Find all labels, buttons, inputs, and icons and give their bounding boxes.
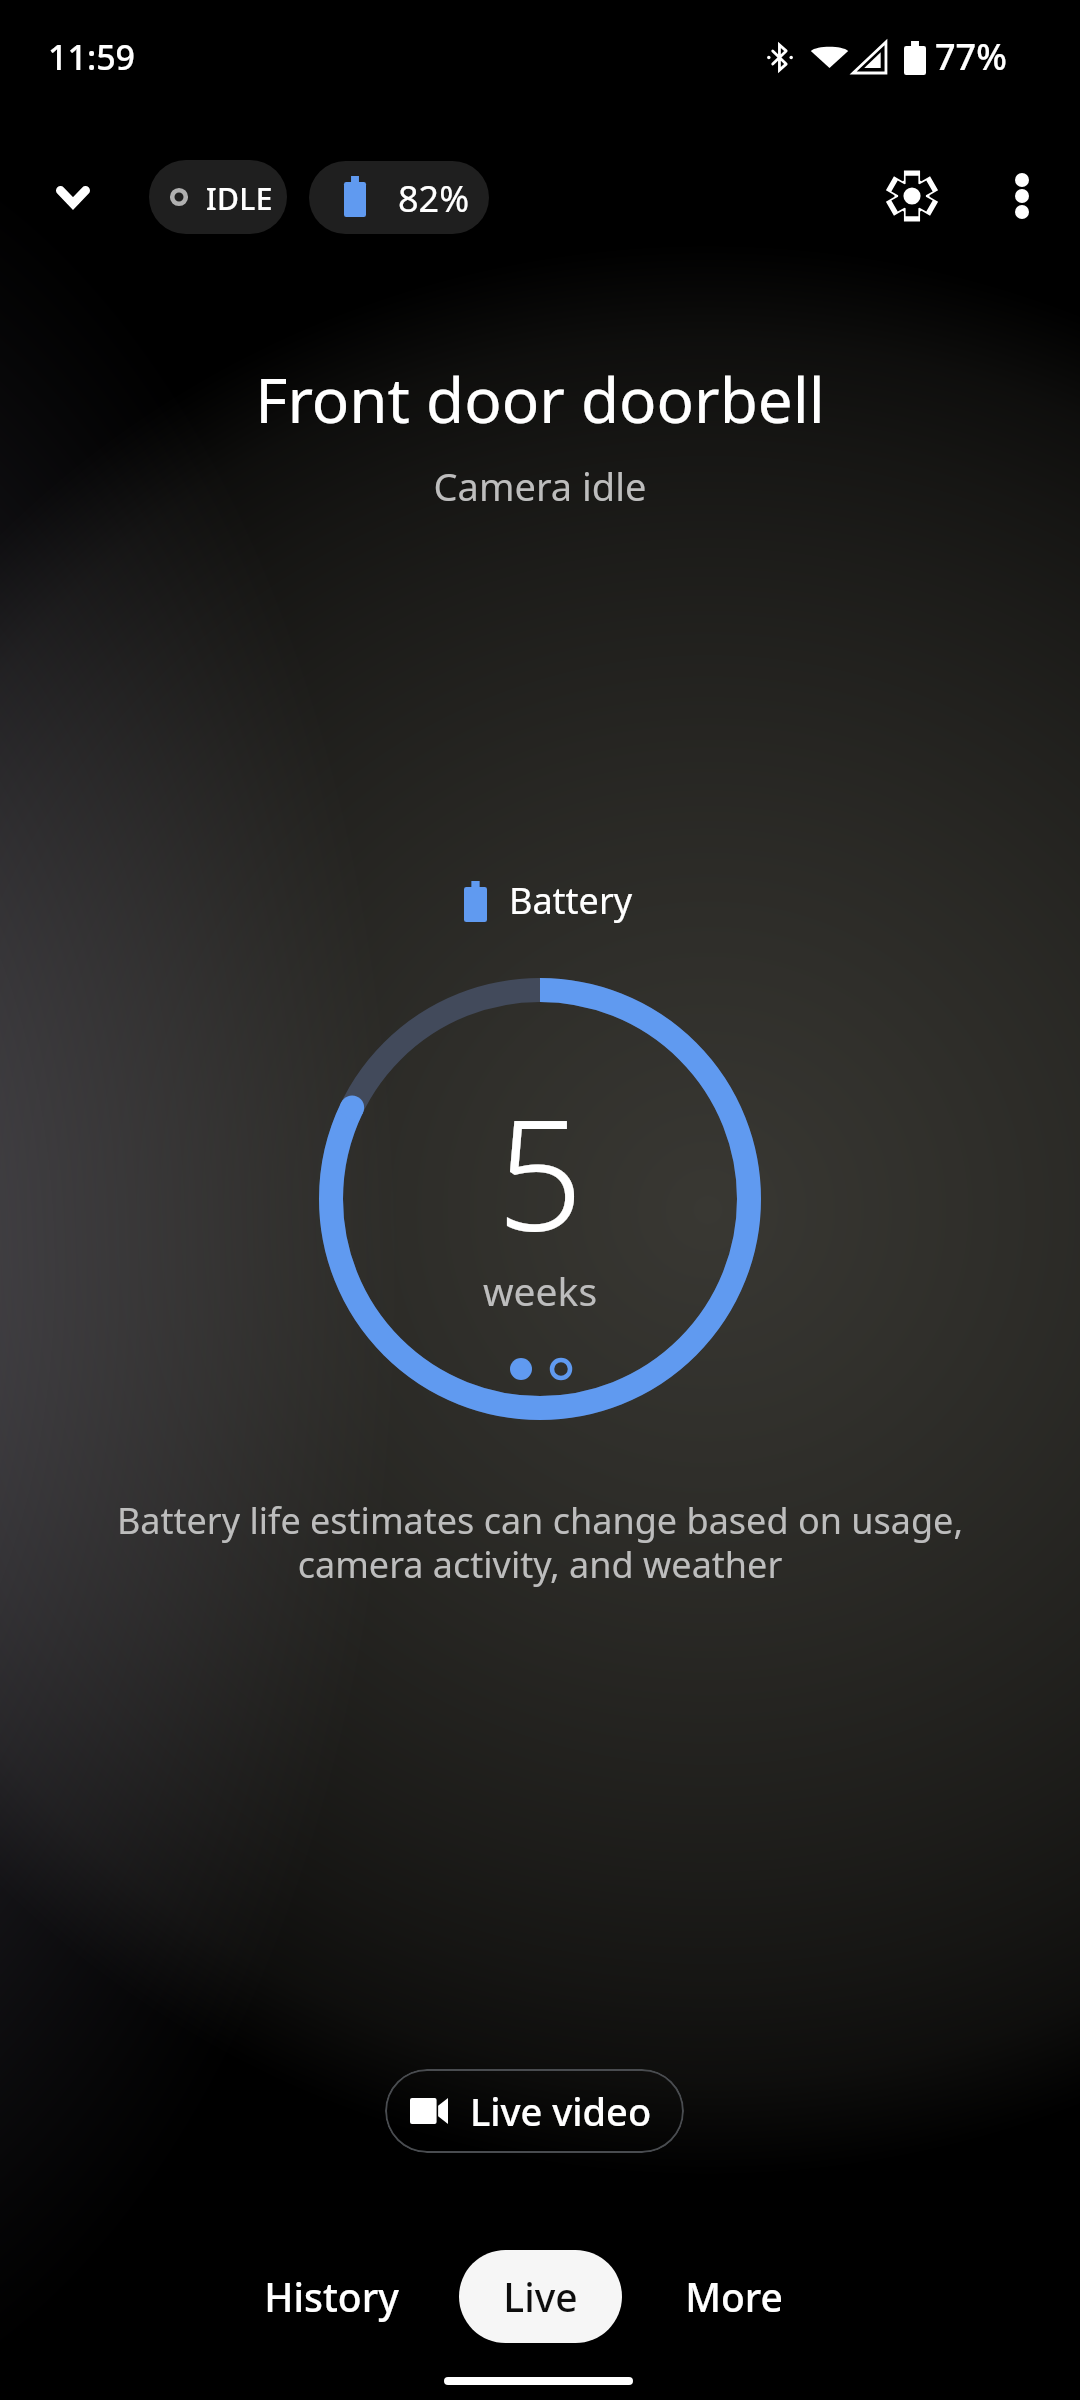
button[interactable]: 82% xyxy=(309,161,489,234)
staticText: Battery life estimates can change based … xyxy=(0,1496,1080,1588)
button[interactable]: Collapse xyxy=(29,153,117,241)
staticText: weeks xyxy=(0,1264,1080,1317)
button[interactable]: More options xyxy=(978,152,1066,240)
staticText: IDLE xyxy=(206,178,273,219)
staticText: More xyxy=(685,2270,783,2323)
button[interactable]: Live xyxy=(459,2250,622,2343)
staticText: 11:59 xyxy=(48,34,136,80)
button[interactable]: Settings xyxy=(868,152,956,240)
staticText: 82% xyxy=(398,174,470,223)
staticText: Camera idle xyxy=(0,460,1080,512)
staticText: Front door doorbell xyxy=(0,357,1080,441)
staticText: Live video xyxy=(470,2085,652,2137)
staticText: 77% xyxy=(935,32,1007,81)
staticText: Battery xyxy=(509,876,633,925)
staticText: Live xyxy=(503,2270,578,2323)
button[interactable]: History xyxy=(232,2250,430,2343)
button[interactable]: IDLE xyxy=(149,160,287,234)
staticText: History xyxy=(264,2270,399,2323)
button[interactable]: More xyxy=(655,2250,812,2343)
staticText: 5 xyxy=(0,1068,1080,1275)
button[interactable]: Live video xyxy=(385,2069,684,2153)
